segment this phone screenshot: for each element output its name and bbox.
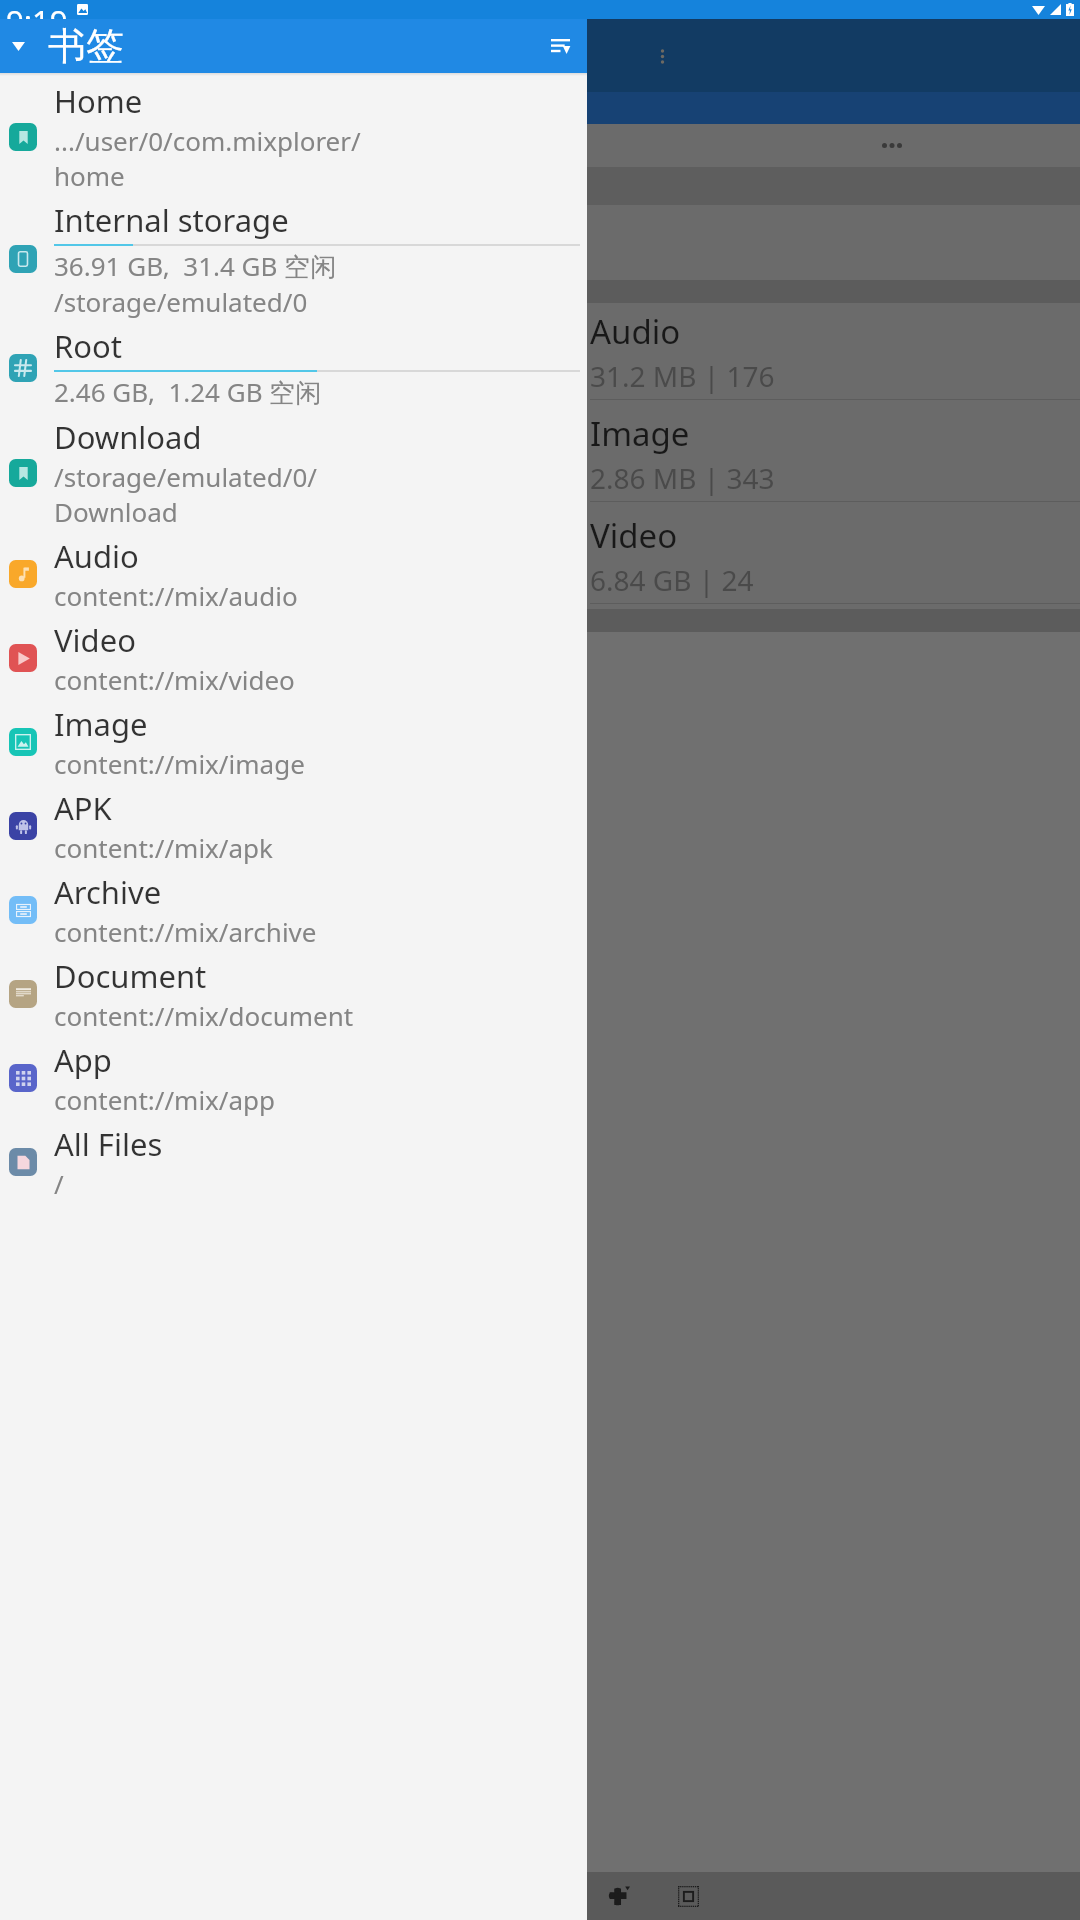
staticText: 2.86 MB | 343 (590, 459, 775, 497)
staticText: Home (54, 80, 143, 122)
button[interactable]: Image (0, 700, 587, 784)
button[interactable]: App (0, 1036, 587, 1120)
button[interactable]: Document (0, 952, 587, 1036)
staticText: content://mix/video (54, 662, 295, 697)
button[interactable]: Select all (670, 1878, 707, 1915)
button[interactable]: APK (0, 784, 587, 868)
button[interactable]: Audio (587, 303, 1080, 405)
staticText: content://mix/audio (54, 578, 298, 613)
staticText: Document (54, 955, 207, 997)
staticText: 2.46 GB, 1.24 GB 空闲 (54, 374, 322, 410)
staticText: App (54, 1039, 112, 1081)
staticText: /storage/emulated/0 (54, 284, 308, 319)
staticText: content://mix/document (54, 998, 354, 1033)
button[interactable]: Root (0, 322, 587, 413)
staticText: home (54, 158, 125, 193)
staticText: 31.2 MB | 176 (590, 357, 775, 395)
button[interactable]: All Files (0, 1120, 587, 1204)
staticText: / (54, 1166, 64, 1201)
button[interactable]: Plugins (600, 1878, 637, 1915)
staticText: content://mix/image (54, 746, 305, 781)
button[interactable]: Home (0, 76, 587, 196)
button[interactable]: Archive (0, 868, 587, 952)
staticText: Internal storage (54, 199, 289, 241)
staticText: 36.91 GB, 31.4 GB 空闲 (54, 248, 337, 284)
button[interactable]: Image (587, 405, 1080, 507)
staticText: Download (54, 416, 202, 458)
staticText: Video (590, 513, 678, 558)
button[interactable]: Internal storage (0, 196, 587, 322)
staticText: APK (54, 787, 112, 829)
button[interactable]: Video (587, 507, 1080, 609)
staticText: Audio (590, 309, 681, 354)
staticText: Video (54, 619, 136, 661)
staticText: content://mix/app (54, 1082, 276, 1117)
staticText: All Files (54, 1123, 163, 1165)
staticText: .../user/0/com.mixplorer/ (54, 123, 361, 158)
staticText: 6.84 GB | 24 (590, 561, 754, 599)
staticText: Root (54, 325, 122, 367)
button[interactable]: More options (647, 41, 677, 71)
staticText: Image (54, 703, 148, 745)
staticText: /storage/emulated/0/ (54, 459, 317, 494)
button[interactable]: Audio (0, 532, 587, 616)
staticText: 书签 (48, 22, 124, 70)
button[interactable]: Expand (3, 31, 33, 61)
button[interactable]: Sort (544, 30, 577, 63)
staticText: Image (590, 411, 690, 456)
button[interactable]: Download (0, 413, 587, 532)
staticText: Audio (54, 535, 139, 577)
staticText: content://mix/apk (54, 830, 273, 865)
staticText: Download (54, 494, 178, 529)
staticText: content://mix/archive (54, 914, 317, 949)
button[interactable]: Video (0, 616, 587, 700)
staticText: 9:19 (6, 0, 68, 19)
staticText: Archive (54, 871, 162, 913)
